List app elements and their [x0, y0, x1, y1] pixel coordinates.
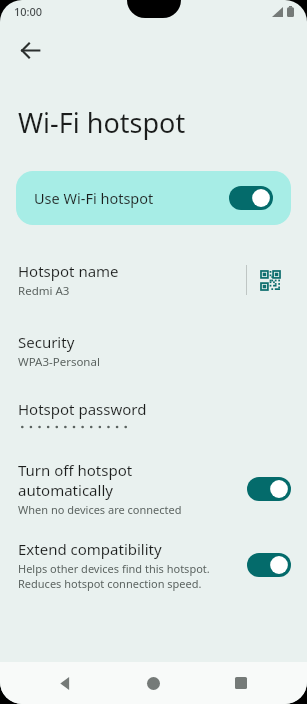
button[interactable]: Use Wi-Fi hotspot [16, 171, 291, 225]
staticText: Reduces hotspot connection speed. [18, 576, 202, 591]
staticText: Turn off hotspot [18, 460, 133, 480]
staticText: When no devices are connected [18, 502, 182, 517]
staticText: automatically [18, 480, 113, 500]
staticText: Redmi A3 [18, 283, 70, 299]
staticText: Helps other devices find this hotspot. [18, 561, 210, 576]
button[interactable]: Hotspot name [0, 257, 307, 303]
staticText: Use Wi-Fi hotspot [34, 188, 229, 208]
button[interactable]: Hotspot password [0, 399, 307, 430]
staticText: Hotspot password [18, 399, 147, 419]
button[interactable]: Back [43, 662, 87, 704]
button[interactable]: Share hotspot QR code [247, 257, 293, 303]
staticText: 10:00 [14, 4, 43, 19]
staticText: WPA3-Personal [18, 354, 100, 370]
staticText: Hotspot name [18, 261, 119, 281]
staticText: Wi-Fi hotspot [18, 104, 186, 141]
button[interactable]: Recent apps [219, 662, 263, 704]
button[interactable]: Back [8, 28, 52, 72]
button[interactable]: Extend compatibility [0, 539, 307, 591]
button[interactable]: Security [0, 332, 307, 370]
button[interactable]: Home [131, 662, 175, 704]
staticText: Extend compatibility [18, 539, 162, 559]
staticText: Security [18, 332, 75, 352]
button[interactable]: Turn off hotspot [0, 460, 307, 517]
